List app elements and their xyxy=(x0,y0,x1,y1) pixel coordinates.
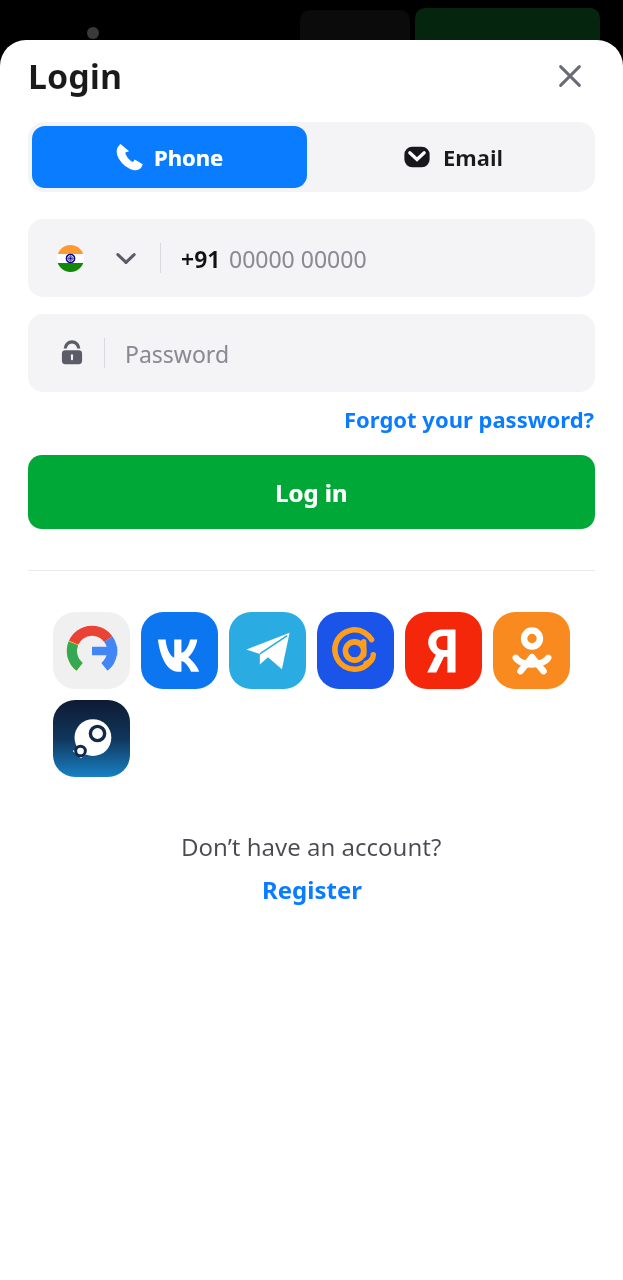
staticText: 00000 00000 xyxy=(229,243,367,274)
staticText: Don’t have an account? xyxy=(181,830,442,863)
staticText: Register xyxy=(262,873,362,906)
staticText: Password xyxy=(125,338,230,369)
button[interactable]: Sign in with Odnoklassniki xyxy=(493,612,570,689)
staticText: Forgot your password? xyxy=(344,404,595,434)
button[interactable]: Sign in with Google xyxy=(53,612,130,689)
button[interactable]: Sign in with Mail.ru xyxy=(317,612,394,689)
staticText: Phone xyxy=(154,142,224,172)
staticText: +91 xyxy=(181,243,221,274)
button[interactable]: Email xyxy=(311,122,595,192)
button[interactable]: Log in xyxy=(28,455,595,529)
button[interactable]: Password xyxy=(28,314,595,392)
staticText: Login xyxy=(28,53,123,99)
button[interactable]: Close xyxy=(550,56,590,96)
button[interactable]: Sign in with Yandex xyxy=(405,612,482,689)
button[interactable]: Register xyxy=(262,873,362,906)
staticText: Log in xyxy=(275,476,348,509)
button[interactable]: +91 xyxy=(28,219,595,297)
button[interactable]: Sign in with Telegram xyxy=(229,612,306,689)
button[interactable]: Sign in with VK xyxy=(141,612,218,689)
button[interactable]: Sign in with Steam xyxy=(53,700,130,777)
button[interactable]: Forgot your password? xyxy=(344,404,595,434)
button[interactable]: Phone xyxy=(32,126,307,188)
staticText: Email xyxy=(443,142,504,172)
